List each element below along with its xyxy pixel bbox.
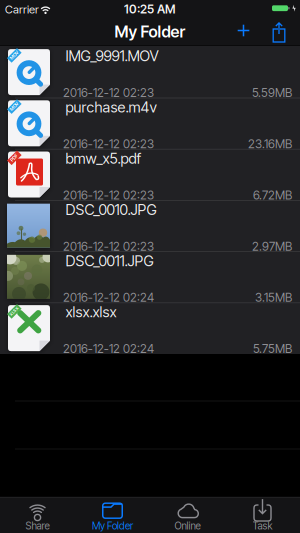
staticText: DSC_0010.JPG [65,201,156,218]
staticText: My Folder [92,520,133,532]
staticText: Share [25,520,49,532]
staticText: 6.72MB [253,188,292,202]
staticText: IMG_9991.MOV [65,47,158,65]
staticText: My Folder [114,22,185,41]
staticText: 10:25 AM [124,2,175,16]
button[interactable]: Task [225,498,300,533]
staticText: MOV [9,52,19,58]
staticText: 5.59MB [252,85,292,100]
staticText: 2016-12-12 02:23 [63,85,154,100]
staticText: 2016-12-12 02:23 [63,137,154,151]
button[interactable]: Add [231,18,255,42]
staticText: 23.16MB [248,137,292,151]
staticText: 3.15MB [255,290,292,305]
staticText: purchase.m4v [65,98,156,116]
staticText: Task [252,520,272,532]
staticText: Carrier [5,2,39,16]
button[interactable]: MOV [0,98,300,149]
button[interactable]: Share [270,19,292,43]
staticText: MOV [9,103,19,109]
button[interactable]: Share [0,498,75,533]
staticText: 2016-12-12 02:24 [63,290,154,305]
staticText: 2016-12-12 02:24 [63,341,154,356]
button[interactable]: DSC_0011.JPG [0,252,300,303]
staticText: Online [174,520,200,532]
button[interactable]: PDF [0,149,300,200]
button[interactable]: MOV [0,47,300,98]
staticText: xlsx.xlsx [65,303,116,321]
staticText: DSC_0011.JPG [65,252,153,270]
staticText: 5.75MB [253,341,292,356]
staticText: 2016-12-12 02:23 [63,188,154,202]
staticText: PDF [10,155,19,160]
button[interactable]: Online [150,498,225,533]
staticText: 2.97MB [252,239,292,253]
staticText: XLSX [9,309,20,314]
button[interactable]: My Folder [75,498,150,533]
staticText: bmw_x5.pdf [65,149,141,167]
button[interactable]: DSC_0010.JPG [0,200,300,252]
staticText: 2016-12-12 02:23 [63,239,154,253]
button[interactable]: XLSX [0,303,300,354]
